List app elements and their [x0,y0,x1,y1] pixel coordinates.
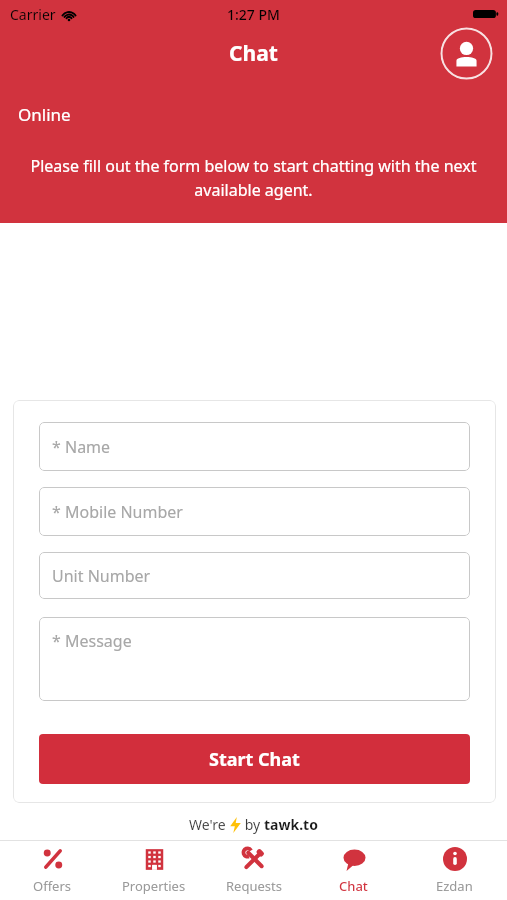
button[interactable]: Offers [5,840,100,900]
button[interactable]: Chat [306,840,401,900]
staticText: * Name [52,436,111,458]
staticText: We're [189,815,230,834]
staticText: Ezdan [436,877,473,895]
staticText: Carrier [10,5,56,24]
button[interactable]: Requests [206,840,301,900]
staticText: by [241,815,264,834]
button[interactable]: * Mobile Number [39,487,470,536]
staticText: Properties [122,877,186,895]
button[interactable]: * Name [39,422,470,471]
button[interactable]: Properties [106,840,201,900]
staticText: Chat [229,39,278,68]
staticText: Online [18,103,71,126]
staticText: Offers [33,877,72,895]
staticText: * Message [52,630,132,652]
staticText: * Mobile Number [52,501,183,523]
button[interactable]: Ezdan [407,840,502,900]
staticText: Requests [226,877,282,895]
button[interactable]: * Message [39,617,470,701]
staticText: tawk.to [264,815,318,834]
button[interactable]: Start Chat [39,734,470,784]
button[interactable]: Unit Number [39,552,470,599]
button[interactable]: We're [189,815,318,834]
staticText: Start Chat [209,747,300,772]
staticText: 1:27 PM [227,5,280,24]
staticText: Chat [339,877,368,895]
staticText: Unit Number [52,565,151,587]
button[interactable]: Profile [440,27,493,80]
staticText: Please fill out the form below to start … [28,155,479,201]
